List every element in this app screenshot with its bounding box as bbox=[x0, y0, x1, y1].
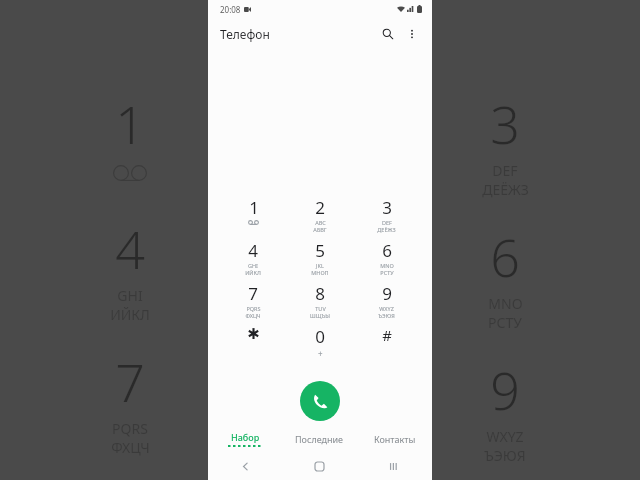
staticText: ШЩЪЫ bbox=[310, 312, 330, 319]
staticText: ABC bbox=[315, 219, 326, 226]
staticText: 9 bbox=[490, 354, 520, 425]
button[interactable]: 2 bbox=[286, 196, 353, 239]
staticText: GHI bbox=[117, 286, 143, 305]
staticText: 9 bbox=[382, 282, 392, 305]
staticText: 6 bbox=[382, 239, 392, 262]
button[interactable]: Search bbox=[378, 24, 398, 44]
staticText: 1 bbox=[115, 88, 145, 159]
button[interactable]: 0 bbox=[286, 325, 353, 368]
staticText: DEF bbox=[492, 161, 518, 180]
staticText: Телефон bbox=[220, 26, 270, 42]
staticText: WXYZ bbox=[486, 427, 524, 446]
staticText: АБВГ bbox=[313, 226, 327, 233]
button[interactable]: Home bbox=[282, 452, 357, 480]
staticText: РСТУ bbox=[380, 269, 394, 276]
staticText: 20:08 bbox=[220, 4, 241, 15]
staticText: 0 bbox=[315, 325, 325, 348]
staticText: 4 bbox=[248, 239, 258, 262]
button[interactable]: 4 bbox=[220, 239, 286, 282]
staticText: ИЙКЛ bbox=[245, 269, 261, 276]
staticText: ФХЦЧ bbox=[111, 438, 150, 457]
button[interactable]: 3 bbox=[353, 196, 420, 239]
staticText: PQRS bbox=[246, 305, 261, 312]
button[interactable]: 5 bbox=[286, 239, 353, 282]
button[interactable]: Последние bbox=[282, 426, 357, 452]
button[interactable]: ✱ bbox=[220, 325, 286, 368]
staticText: Набор bbox=[231, 431, 260, 443]
staticText: JKL bbox=[316, 262, 324, 269]
staticText: ЪЭЮЯ bbox=[484, 446, 526, 465]
staticText: ФХЦЧ bbox=[245, 312, 261, 319]
staticText: ИЙКЛ bbox=[110, 305, 150, 324]
button[interactable]: 9 bbox=[353, 282, 420, 325]
button[interactable]: # bbox=[353, 325, 420, 368]
button[interactable]: Контакты bbox=[357, 426, 432, 452]
staticText: GHI bbox=[248, 262, 258, 269]
staticText: ✱ bbox=[247, 325, 260, 342]
staticText: 4 bbox=[115, 213, 145, 284]
button[interactable]: 8 bbox=[286, 282, 353, 325]
staticText: # bbox=[382, 325, 392, 345]
staticText: MNO bbox=[488, 294, 523, 313]
button[interactable]: 6 bbox=[353, 239, 420, 282]
button[interactable]: 7 bbox=[220, 282, 286, 325]
staticText: 7 bbox=[115, 346, 145, 417]
button[interactable]: Back bbox=[208, 452, 282, 480]
staticText: 1 bbox=[249, 196, 259, 219]
staticText: 6 bbox=[490, 221, 520, 292]
staticText: 5 bbox=[315, 239, 325, 262]
button[interactable]: Call bbox=[300, 381, 340, 421]
staticText: ДЕЁЖЗ bbox=[482, 180, 529, 199]
staticText: + bbox=[318, 348, 323, 359]
staticText: РСТУ bbox=[488, 313, 522, 332]
staticText: ЪЭЮЯ bbox=[378, 312, 395, 319]
button[interactable]: Recents bbox=[357, 452, 432, 480]
staticText: Последние bbox=[295, 433, 344, 445]
staticText: TUV bbox=[315, 305, 326, 312]
button[interactable]: More options bbox=[402, 24, 422, 44]
staticText: PQRS bbox=[112, 419, 148, 438]
staticText: МНОП bbox=[311, 269, 329, 276]
staticText: 3 bbox=[382, 196, 392, 219]
staticText: ДЕЁЖЗ bbox=[377, 226, 396, 233]
staticText: 8 bbox=[315, 282, 325, 305]
button[interactable]: 1 bbox=[220, 196, 286, 239]
staticText: 2 bbox=[315, 196, 325, 219]
button[interactable]: Набор bbox=[208, 426, 282, 452]
staticText: 3 bbox=[490, 88, 520, 159]
staticText: 7 bbox=[248, 282, 258, 305]
staticText: WXYZ bbox=[379, 305, 394, 312]
staticText: DEF bbox=[382, 219, 392, 226]
staticText: MNO bbox=[380, 262, 394, 269]
staticText: Контакты bbox=[374, 433, 416, 445]
